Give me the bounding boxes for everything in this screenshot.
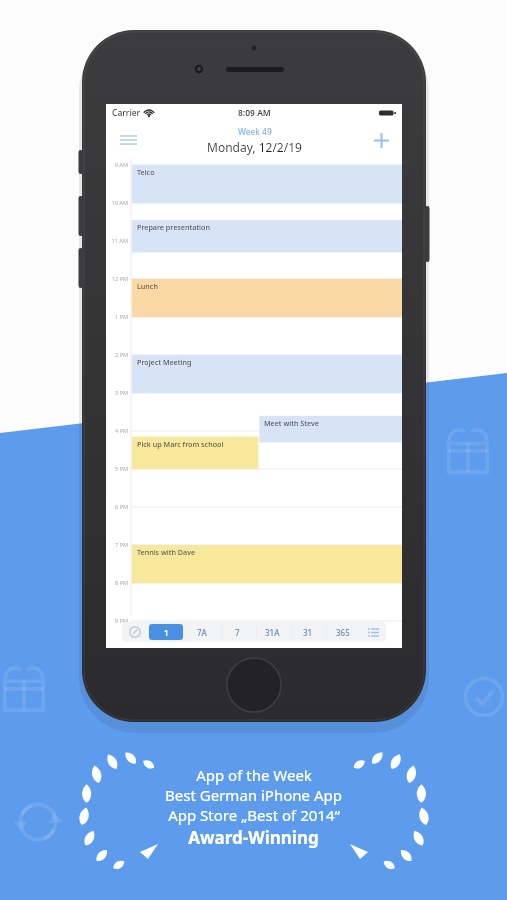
staticText: App of the Week bbox=[196, 765, 312, 785]
staticText: 31 bbox=[303, 627, 313, 638]
staticText: Pick up Marc from school bbox=[137, 439, 224, 449]
button[interactable]: Tennis with Dave bbox=[132, 545, 403, 583]
button[interactable]: 1 bbox=[149, 624, 183, 640]
button[interactable]: Meet with Steve bbox=[259, 416, 403, 443]
button[interactable]: Project Meeting bbox=[132, 355, 403, 393]
button[interactable]: List view bbox=[360, 622, 386, 642]
staticText: 10 AM bbox=[106, 199, 128, 207]
staticText: 9 AM bbox=[106, 161, 128, 169]
staticText: 31A bbox=[265, 627, 280, 638]
staticText: 7 bbox=[235, 627, 240, 638]
button[interactable]: Telco bbox=[132, 165, 403, 203]
staticText: Telco bbox=[137, 167, 155, 177]
staticText: 11 AM bbox=[106, 237, 128, 245]
staticText: 2 PM bbox=[106, 351, 128, 359]
staticText: Lunch bbox=[137, 281, 158, 291]
button[interactable]: Lunch bbox=[132, 279, 403, 317]
staticText: App Store „Best of 2014“ bbox=[168, 805, 340, 825]
staticText: 4 PM bbox=[106, 427, 128, 435]
staticText: 1 PM bbox=[106, 313, 128, 321]
button[interactable]: Pick up Marc from school bbox=[132, 437, 259, 469]
button[interactable]: 31A bbox=[256, 624, 289, 640]
staticText: 8 PM bbox=[106, 579, 128, 587]
staticText: Award-Winning bbox=[188, 826, 319, 849]
staticText: 3 PM bbox=[106, 389, 128, 397]
staticText: 5 PM bbox=[106, 465, 128, 473]
button[interactable]: 365 bbox=[326, 624, 359, 640]
button[interactable]: 7A bbox=[185, 624, 219, 640]
staticText: Carrier bbox=[112, 107, 141, 119]
button[interactable]: Today bbox=[122, 622, 148, 642]
staticText: 9 PM bbox=[106, 617, 128, 625]
staticText: Best German iPhone App bbox=[165, 785, 342, 805]
staticText: Project Meeting bbox=[137, 357, 192, 367]
staticText: 7 PM bbox=[106, 541, 128, 549]
staticText: 1 bbox=[164, 627, 169, 638]
button[interactable]: Menu bbox=[113, 125, 143, 155]
button[interactable]: Prepare presentation bbox=[132, 220, 403, 252]
staticText: 365 bbox=[336, 627, 350, 638]
staticText: Prepare presentation bbox=[137, 222, 210, 232]
staticText: 7A bbox=[197, 627, 207, 638]
button[interactable]: Add event bbox=[366, 125, 396, 155]
staticText: Tennis with Dave bbox=[137, 547, 196, 557]
staticText: 8:09 AM bbox=[238, 107, 271, 119]
button[interactable]: 7 bbox=[221, 624, 254, 640]
staticText: Week 49 bbox=[238, 126, 272, 138]
staticText: 12 PM bbox=[106, 275, 128, 283]
staticText: Monday, 12/2/19 bbox=[207, 139, 302, 155]
button[interactable]: 31 bbox=[291, 624, 324, 640]
staticText: Meet with Steve bbox=[264, 418, 319, 428]
staticText: 6 PM bbox=[106, 503, 128, 511]
